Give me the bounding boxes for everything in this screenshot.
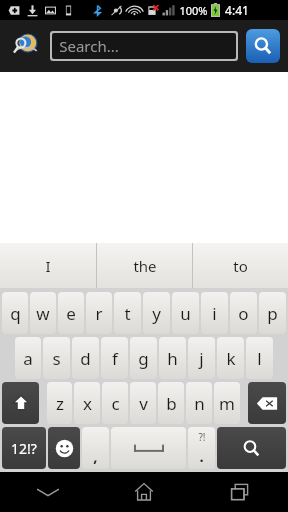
staticText: j <box>199 347 204 370</box>
button[interactable]: , <box>82 427 109 469</box>
button[interactable]: to <box>193 243 288 288</box>
button[interactable]: Search... <box>52 33 236 59</box>
button[interactable]: m <box>214 382 240 424</box>
staticText: r <box>95 302 103 325</box>
staticText: n <box>194 392 205 415</box>
staticText: x <box>83 392 92 415</box>
button[interactable]: j <box>188 337 215 379</box>
staticText: ?! <box>198 430 206 444</box>
staticText: o <box>238 302 249 325</box>
button[interactable]: Home <box>96 472 192 512</box>
staticText: . <box>199 446 204 466</box>
staticText: a <box>23 347 33 370</box>
button[interactable]: the <box>97 243 192 288</box>
button[interactable]: n <box>186 382 212 424</box>
staticText: z <box>56 392 64 415</box>
staticText: k <box>226 347 236 370</box>
button[interactable]: u <box>172 292 199 334</box>
button[interactable]: c <box>102 382 128 424</box>
staticText: q <box>10 302 21 325</box>
staticText: l <box>257 347 262 370</box>
button[interactable]: ?! <box>188 427 215 469</box>
staticText: w <box>36 302 50 325</box>
button[interactable]: d <box>72 337 99 379</box>
button[interactable]: b <box>158 382 184 424</box>
button[interactable]: p <box>259 292 286 334</box>
staticText: m <box>219 392 235 415</box>
button[interactable]: y <box>143 292 170 334</box>
button[interactable]: Emoji <box>48 427 80 469</box>
staticText: f <box>112 347 118 370</box>
staticText: y <box>152 302 161 325</box>
staticText: h <box>167 347 178 370</box>
staticText: 12!? <box>11 439 37 458</box>
button[interactable]: Search <box>246 29 280 63</box>
button[interactable]: i <box>201 292 228 334</box>
button[interactable]: l <box>246 337 273 379</box>
staticText: u <box>180 302 191 325</box>
button[interactable]: Symbols <box>2 427 46 469</box>
button[interactable]: t <box>114 292 141 334</box>
button[interactable]: Back <box>0 472 96 512</box>
staticText: Search... <box>59 36 119 56</box>
staticText: the <box>133 256 157 276</box>
button[interactable]: f <box>101 337 128 379</box>
staticText: e <box>66 302 76 325</box>
button[interactable]: v <box>130 382 156 424</box>
button[interactable]: e <box>58 292 84 334</box>
staticText: b <box>166 392 177 415</box>
staticText: d <box>80 347 91 370</box>
staticText: v <box>139 392 148 415</box>
button[interactable]: Recents <box>192 472 288 512</box>
staticText: s <box>52 347 61 370</box>
button[interactable]: z <box>47 382 72 424</box>
button[interactable]: Delete <box>248 382 286 424</box>
staticText: c <box>111 392 120 415</box>
staticText: g <box>138 347 149 370</box>
button[interactable]: o <box>230 292 257 334</box>
button[interactable]: Space <box>111 427 186 469</box>
staticText: 100% <box>179 3 208 18</box>
button[interactable]: Shift <box>2 382 39 424</box>
button[interactable]: x <box>74 382 100 424</box>
button[interactable]: r <box>86 292 112 334</box>
button[interactable]: s <box>43 337 70 379</box>
button[interactable]: Search <box>217 427 286 469</box>
button[interactable]: I <box>0 243 96 288</box>
staticText: t <box>124 302 131 325</box>
staticText: 4:41 <box>225 2 249 18</box>
button[interactable]: g <box>130 337 157 379</box>
staticText: I <box>45 256 51 276</box>
button[interactable]: w <box>30 292 56 334</box>
button[interactable]: q <box>2 292 28 334</box>
staticText: p <box>267 302 278 325</box>
button[interactable]: Web search <box>8 28 44 64</box>
staticText: i <box>212 302 217 325</box>
staticText: to <box>233 256 248 276</box>
button[interactable]: k <box>217 337 244 379</box>
staticText: , <box>93 446 98 466</box>
button[interactable]: h <box>159 337 186 379</box>
button[interactable]: a <box>15 337 41 379</box>
